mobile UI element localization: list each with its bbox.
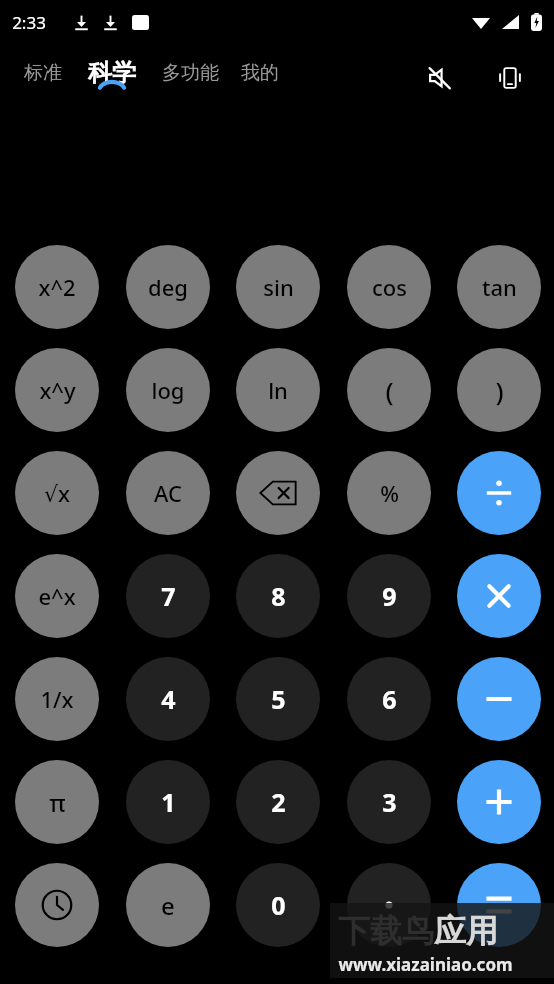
button[interactable]: 我的 [239,61,281,96]
button[interactable]: Vibrate [488,56,532,100]
staticText: e^x [38,581,76,611]
staticText: 8 [271,579,286,613]
staticText: √x [44,478,70,508]
staticText: 4 [161,682,176,716]
button[interactable]: log [126,348,210,432]
button[interactable]: 多功能 [160,61,221,96]
button[interactable]: 3 [347,760,431,844]
button[interactable]: e^x [15,554,99,638]
button[interactable]: 2 [236,760,320,844]
button[interactable]: 7 [126,554,210,638]
staticText: 1 [161,785,176,819]
button[interactable]: History [15,863,99,947]
button[interactable]: e [126,863,210,947]
staticText: www.xiazainiao.com [338,953,513,976]
button[interactable]: Mute [418,56,462,100]
staticText: sin [263,272,294,302]
staticText: 9 [382,579,397,613]
staticText: x^y [39,375,76,405]
button[interactable]: 6 [347,657,431,741]
staticText: 6 [382,682,397,716]
button[interactable]: Backspace [236,451,320,535]
button[interactable]: x^y [15,348,99,432]
button[interactable]: ln [236,348,320,432]
staticText: 7 [161,579,176,613]
button[interactable]: Divide [457,451,541,535]
button[interactable]: Subtract [457,657,541,741]
staticText: 下载鸟 [338,911,434,951]
staticText: ) [495,373,504,408]
button[interactable]: 5 [236,657,320,741]
staticText: ( [385,373,394,408]
staticText: AC [154,478,182,508]
button[interactable]: 0 [236,863,320,947]
button[interactable]: tan [457,245,541,329]
button[interactable]: 1/x [15,657,99,741]
staticText: 科学 [88,58,136,88]
staticText: x^2 [38,272,76,302]
button[interactable]: √x [15,451,99,535]
button[interactable]: 科学 [86,58,138,99]
staticText: 1/x [40,684,74,714]
button[interactable]: 1 [126,760,210,844]
staticText: 3 [382,785,397,819]
staticText: 2 [271,785,286,819]
staticText: deg [148,272,188,302]
staticText: π [49,786,66,819]
button[interactable]: 标准 [22,61,64,96]
button[interactable]: sin [236,245,320,329]
staticText: 标准 [24,61,62,85]
staticText: cos [372,272,407,302]
button[interactable]: π [15,760,99,844]
staticText: % [380,478,399,508]
button[interactable]: x^2 [15,245,99,329]
button[interactable]: Add [457,760,541,844]
button[interactable]: Multiply [457,554,541,638]
button[interactable]: deg [126,245,210,329]
button[interactable]: 4 [126,657,210,741]
staticText: 0 [271,888,286,922]
staticText: ln [268,375,288,405]
button[interactable]: 9 [347,554,431,638]
button[interactable]: % [347,451,431,535]
staticText: tan [482,272,517,302]
staticText: 多功能 [162,61,219,85]
staticText: 应用 [434,911,498,951]
button[interactable]: ( [347,348,431,432]
staticText: 2:33 [12,11,46,34]
staticText: 我的 [241,61,279,85]
button[interactable]: cos [347,245,431,329]
button[interactable]: Equals [457,863,541,947]
button[interactable]: ) [457,348,541,432]
button[interactable]: 8 [236,554,320,638]
button[interactable]: Decimal point [347,863,431,947]
staticText: e [161,889,175,922]
staticText: log [151,375,185,405]
staticText: 5 [271,682,286,716]
button[interactable]: AC [126,451,210,535]
